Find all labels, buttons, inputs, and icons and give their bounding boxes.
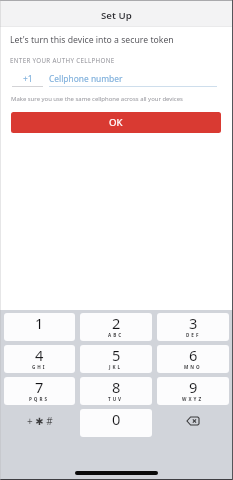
staticText: 9 (189, 377, 198, 397)
button[interactable]: OK (11, 112, 221, 133)
staticText: TUV (108, 396, 124, 402)
staticText: Make sure you use the same cellphone acr… (11, 95, 183, 103)
staticText: DEF (186, 332, 201, 338)
staticText: ABC (108, 332, 124, 338)
button[interactable]: 8 (80, 377, 152, 405)
staticText: PQRS (29, 396, 50, 402)
staticText: Set Up (101, 9, 132, 22)
staticText: GHI (32, 364, 47, 370)
button[interactable]: 1 (4, 313, 75, 341)
staticText: 0 (112, 409, 121, 429)
staticText: 6 (189, 345, 198, 365)
button[interactable]: 3 (157, 313, 229, 341)
staticText: Cellphone number (49, 73, 123, 84)
staticText: 4 (35, 345, 44, 365)
button[interactable]: 2 (80, 313, 152, 341)
staticText: 5 (112, 345, 121, 365)
staticText: OK (109, 116, 123, 129)
staticText: MNO (184, 364, 202, 370)
staticText: WXYZ (182, 396, 204, 402)
button[interactable]: 0 (80, 409, 152, 437)
button[interactable]: 6 (157, 345, 229, 373)
staticText: 3 (189, 313, 198, 333)
staticText: 2 (112, 313, 121, 333)
button[interactable]: Delete (157, 409, 229, 437)
staticText: 1 (35, 313, 44, 333)
button[interactable]: 5 (80, 345, 152, 373)
staticText: Let's turn this device into a secure tok… (10, 34, 174, 46)
button[interactable]: 7 (4, 377, 75, 405)
staticText: JKL (109, 364, 123, 370)
button[interactable]: 9 (157, 377, 229, 405)
staticText: +1 (23, 73, 33, 84)
staticText: + ✱ # (27, 414, 53, 428)
staticText: ENTER YOUR AUTHY CELLPHONE (10, 56, 115, 64)
staticText: 7 (35, 377, 44, 397)
staticText: 8 (112, 377, 121, 397)
button[interactable]: + ✱ # (4, 409, 75, 437)
button[interactable]: 4 (4, 345, 75, 373)
